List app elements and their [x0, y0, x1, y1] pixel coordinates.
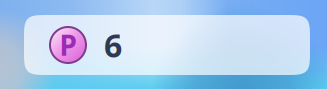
button[interactable]: P [24, 15, 310, 75]
staticText: P [59, 26, 76, 64]
staticText: 6 [104, 24, 122, 66]
